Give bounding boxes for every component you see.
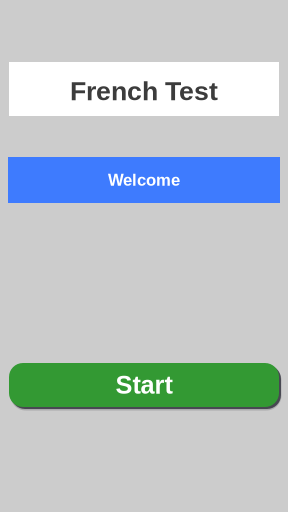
- button[interactable]: Start: [9, 363, 279, 407]
- staticText: French Test: [70, 76, 218, 106]
- staticText: Start: [115, 371, 172, 399]
- staticText: Welcome: [108, 171, 180, 189]
